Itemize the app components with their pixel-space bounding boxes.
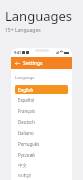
button[interactable]: Português [15, 138, 68, 149]
button[interactable]: Français [15, 105, 68, 116]
staticText: Language [15, 75, 35, 81]
staticText: Deutsch [18, 119, 35, 125]
button[interactable]: Italiano [15, 127, 68, 138]
staticText: Русский [18, 152, 35, 158]
button[interactable]: Русский [15, 149, 68, 160]
button[interactable]: Deutsch [15, 116, 68, 127]
staticText: 中文 [18, 163, 27, 169]
staticText: English [18, 87, 34, 93]
button[interactable]: Español [15, 94, 68, 105]
button[interactable]: 日本語 [15, 171, 68, 180]
staticText: 9:41 [14, 50, 21, 55]
staticText: Español [18, 97, 35, 103]
staticText: Italiano [18, 130, 34, 136]
staticText: 15+ Languages [5, 27, 41, 34]
button[interactable]: Back [11, 57, 72, 69]
staticText: Português [18, 141, 40, 147]
staticText: Settings [23, 60, 43, 67]
staticText: Languages [5, 7, 73, 25]
staticText: 日本語 [18, 173, 32, 179]
button[interactable]: English [15, 85, 68, 94]
staticText: Français [18, 108, 35, 114]
button[interactable]: 中文 [15, 160, 68, 171]
button[interactable]: Back [14, 60, 20, 66]
